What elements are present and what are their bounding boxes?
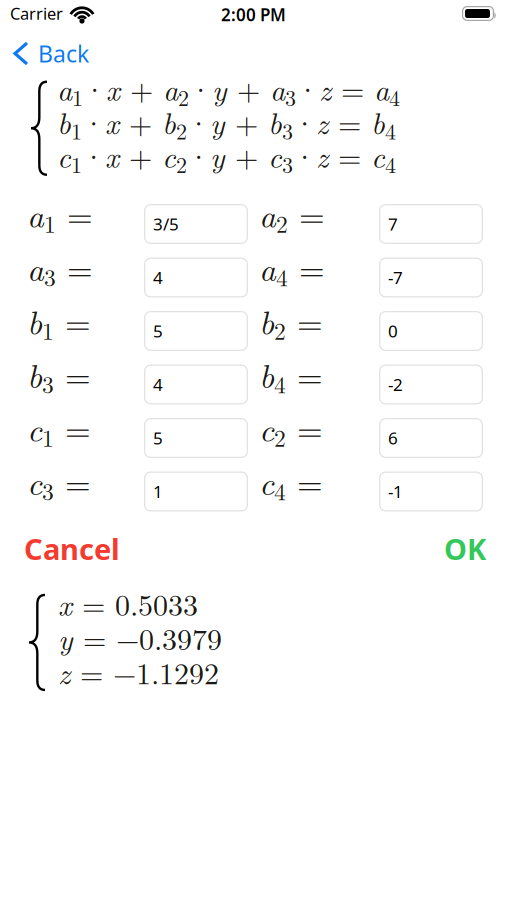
staticText: y = −0.3979 [58, 617, 222, 658]
button[interactable]: 4 [144, 257, 248, 297]
staticText: 3/5 [153, 212, 179, 236]
staticText: Carrier [10, 2, 63, 25]
staticText: b1·x + b2·y + b3·z = b4 [57, 101, 396, 145]
staticText: 0 [388, 319, 398, 343]
staticText: c2 = [259, 405, 323, 453]
staticText: c1 = [27, 405, 91, 453]
staticText: a3 = [27, 244, 93, 293]
staticText: a1·x + a2·y + a3·z = a4 [57, 67, 400, 112]
staticText: -2 [388, 373, 403, 396]
button[interactable]: 6 [379, 418, 483, 458]
button[interactable]: 1 [144, 471, 248, 511]
staticText: z = −1.1292 [58, 651, 219, 692]
button[interactable]: 5 [144, 311, 248, 351]
staticText: c1·x + c2·y + c3·z = c4 [57, 134, 396, 179]
staticText: 5 [153, 426, 163, 450]
staticText: b1 = [27, 298, 91, 346]
staticText: 6 [388, 426, 398, 450]
staticText: b3 = [27, 351, 91, 400]
staticText: -1 [388, 480, 403, 503]
staticText: OK [444, 529, 486, 568]
staticText: 1 [153, 480, 163, 503]
button[interactable]: 5 [144, 418, 248, 458]
button[interactable]: 4 [144, 364, 248, 404]
button[interactable]: 0 [379, 311, 483, 351]
staticText: 5 [153, 319, 163, 343]
staticText: 4 [153, 373, 163, 396]
staticText: x = 0.5033 [58, 582, 198, 624]
staticText: a4 = [259, 244, 325, 293]
button[interactable]: Cancel [24, 529, 120, 568]
staticText: 4 [153, 266, 163, 289]
staticText: b2 = [259, 298, 323, 346]
button[interactable]: -2 [379, 364, 483, 404]
staticText: 2:00 PM [221, 3, 286, 26]
staticText: c4 = [259, 458, 323, 507]
staticText: a2 = [259, 191, 325, 239]
staticText: b4 = [259, 351, 323, 400]
staticText: -7 [388, 266, 403, 289]
button[interactable]: Back [0, 38, 89, 69]
staticText: 7 [388, 212, 398, 236]
staticText: c3 = [27, 458, 91, 507]
button[interactable]: OK [444, 529, 486, 568]
button[interactable]: 3/5 [144, 204, 248, 244]
staticText: a1 = [27, 191, 93, 239]
button[interactable]: 7 [379, 204, 483, 244]
staticText: Cancel [24, 529, 120, 568]
staticText: Back [38, 38, 89, 69]
button[interactable]: -1 [379, 471, 483, 511]
button[interactable]: -7 [379, 257, 483, 297]
